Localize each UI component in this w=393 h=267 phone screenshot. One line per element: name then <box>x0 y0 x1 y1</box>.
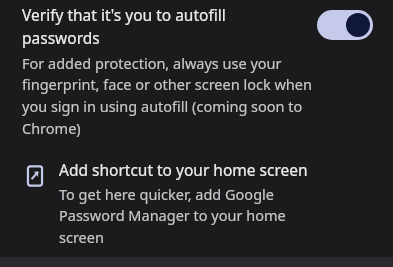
button[interactable]: Add shortcut to your home screen <box>0 159 393 248</box>
button[interactable]: Verify that it's you to autofill passwor… <box>0 0 393 49</box>
staticText: Verify that it's you to autofill passwor… <box>22 4 272 49</box>
staticText: For added protection, always use your fi… <box>22 53 312 139</box>
staticText: Add shortcut to your home screen <box>59 159 308 180</box>
button[interactable]: Verify that it's you to autofill passwor… <box>317 10 373 40</box>
staticText: To get here quicker, add Google Password… <box>59 184 334 248</box>
